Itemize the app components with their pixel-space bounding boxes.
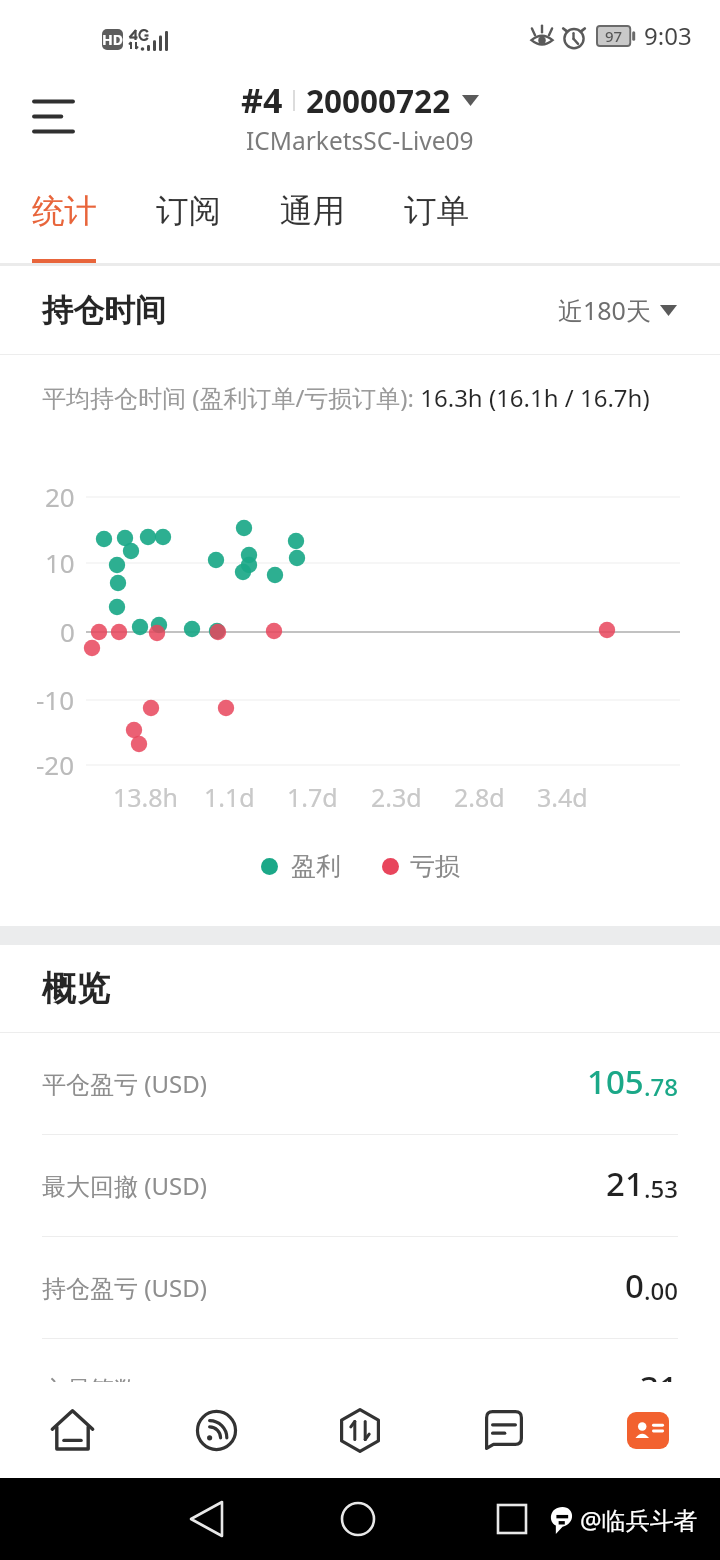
staticText: 21 xyxy=(606,1161,644,1206)
staticText: 0 xyxy=(60,614,75,649)
staticText: .00 xyxy=(644,1274,678,1307)
button[interactable]: 订单 xyxy=(374,166,498,266)
staticText: 31 xyxy=(640,1365,678,1382)
staticText: 统计 xyxy=(32,191,97,232)
staticText: 订单 xyxy=(404,191,469,232)
staticText: 20000722 xyxy=(306,79,451,122)
staticText: 通用 xyxy=(280,191,345,232)
button[interactable]: Trade xyxy=(288,1382,432,1478)
staticText: #4 xyxy=(241,77,283,123)
staticText: 13.8h xyxy=(113,780,179,814)
button[interactable]: 持仓盈亏 (USD) xyxy=(0,1237,720,1338)
button[interactable]: Signals xyxy=(144,1382,288,1478)
staticText: 20 xyxy=(45,479,75,514)
button[interactable]: Menu xyxy=(15,78,91,154)
staticText: 3.4d xyxy=(537,780,588,814)
staticText: 2.8d xyxy=(454,780,505,814)
staticText: 持仓盈亏 (USD) xyxy=(42,1271,207,1304)
staticText: .78 xyxy=(644,1070,678,1103)
button[interactable]: 最大回撤 (USD) xyxy=(0,1135,720,1236)
staticText: 持仓时间 xyxy=(42,291,166,330)
staticText: 平均持仓时间 (盈利订单/亏损订单): 16.3h (16.1h / 16.7h… xyxy=(42,381,650,414)
staticText: ICMarketsSC-Live09 xyxy=(246,124,474,157)
staticText: 2.3d xyxy=(371,780,422,814)
staticText: 亏损 xyxy=(410,851,460,882)
staticText: 105 xyxy=(587,1059,644,1104)
staticText: 97 xyxy=(605,26,623,46)
button[interactable]: 平仓盈亏 (USD) xyxy=(0,1033,720,1134)
staticText: @临兵斗者 xyxy=(580,1503,698,1536)
staticText: 平仓盈亏 (USD) xyxy=(42,1067,207,1100)
button[interactable]: Profile xyxy=(576,1382,720,1478)
button[interactable]: Home xyxy=(0,1382,144,1478)
button[interactable]: 订阅 xyxy=(126,166,250,266)
staticText: 近180天 xyxy=(558,293,651,327)
staticText: 9:03 xyxy=(644,19,692,52)
staticText: -20 xyxy=(36,747,75,782)
button[interactable]: 统计 xyxy=(2,166,126,266)
staticText: .53 xyxy=(644,1172,678,1205)
staticText: 交易笔数 xyxy=(42,1375,138,1382)
button[interactable]: Messages xyxy=(432,1382,576,1478)
staticText: -10 xyxy=(36,682,75,717)
button[interactable]: 通用 xyxy=(250,166,374,266)
button[interactable]: 持仓时间 xyxy=(0,266,720,354)
staticText: 0 xyxy=(625,1263,644,1308)
staticText: 盈利 xyxy=(291,851,341,882)
staticText: 1.7d xyxy=(287,780,338,814)
staticText: 订阅 xyxy=(156,191,221,232)
button[interactable]: 交易笔数 xyxy=(0,1339,720,1382)
staticText: 10 xyxy=(45,545,75,580)
staticText: 最大回撤 (USD) xyxy=(42,1169,207,1202)
staticText: HD xyxy=(102,30,123,49)
staticText: 概览 xyxy=(42,967,110,1010)
staticText: 1.1d xyxy=(204,780,255,814)
